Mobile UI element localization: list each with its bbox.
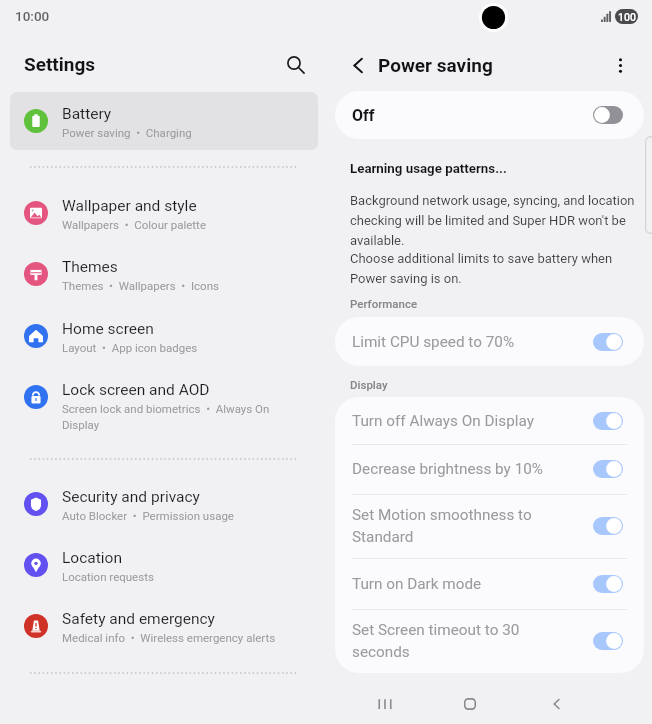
- staticText: Auto Blocker • Permission usage: [62, 509, 234, 522]
- staticText: Security and privacy: [62, 488, 200, 506]
- staticText: Medical info • Wireless emergency alerts: [62, 631, 276, 644]
- staticText: Wallpaper and style: [62, 197, 197, 215]
- button[interactable]: Off: [335, 91, 644, 139]
- button[interactable]: Turn off Always On Display: [335, 397, 644, 444]
- staticText: Set Screen timeout to 30 seconds: [352, 621, 520, 661]
- staticText: Battery: [62, 105, 112, 123]
- button[interactable]: Set Motion smoothness to Standard: [335, 494, 644, 558]
- button[interactable]: Wallpaper and style: [10, 184, 317, 240]
- button[interactable]: Themes: [10, 245, 317, 301]
- button[interactable]: Back: [340, 47, 376, 83]
- staticText: Screen lock and biometrics • Always On D…: [62, 402, 290, 432]
- button[interactable]: Limit CPU speed to 70%: [335, 317, 644, 366]
- staticText: Settings: [24, 53, 96, 75]
- button[interactable]: Recents: [363, 684, 407, 724]
- staticText: 100: [618, 11, 636, 23]
- staticText: 10:00: [15, 8, 50, 24]
- staticText: Learning usage patterns...: [350, 161, 507, 177]
- staticText: Background network usage, syncing, and l…: [350, 193, 642, 248]
- button[interactable]: Battery: [10, 92, 318, 150]
- button[interactable]: More options: [602, 47, 638, 83]
- button[interactable]: Back: [535, 684, 579, 724]
- staticText: Layout • App icon badges: [62, 341, 198, 354]
- button[interactable]: Security and privacy: [10, 475, 317, 531]
- staticText: Lock screen and AOD: [62, 381, 210, 399]
- button[interactable]: Decrease brightness by 10%: [335, 444, 644, 494]
- staticText: Power saving: [378, 54, 493, 76]
- staticText: Choose additional limits to save battery…: [350, 251, 642, 286]
- button[interactable]: Set Screen timeout to 30 seconds: [335, 609, 644, 673]
- staticText: Safety and emergency: [62, 610, 215, 628]
- staticText: Location requests: [62, 570, 154, 583]
- staticText: Decrease brightness by 10%: [352, 460, 544, 478]
- staticText: Themes: [62, 258, 118, 276]
- button[interactable]: Lock screen and AOD: [10, 368, 317, 424]
- staticText: Power saving • Charging: [62, 126, 192, 139]
- staticText: Off: [352, 106, 375, 125]
- staticText: Performance: [350, 297, 418, 310]
- staticText: Turn off Always On Display: [352, 412, 534, 430]
- button[interactable]: Safety and emergency: [10, 597, 317, 653]
- staticText: Turn on Dark mode: [352, 575, 482, 593]
- staticText: Wallpapers • Colour palette: [62, 218, 206, 231]
- staticText: Set Motion smoothness to Standard: [352, 506, 532, 546]
- button[interactable]: Location: [10, 536, 317, 592]
- staticText: Themes • Wallpapers • Icons: [62, 279, 219, 292]
- staticText: Limit CPU speed to 70%: [352, 333, 515, 351]
- button[interactable]: Home screen: [10, 307, 317, 363]
- staticText: Display: [350, 378, 388, 391]
- staticText: Location: [62, 549, 122, 567]
- button[interactable]: Search: [277, 46, 313, 82]
- staticText: Home screen: [62, 320, 154, 338]
- button[interactable]: Turn on Dark mode: [335, 558, 644, 609]
- button[interactable]: Home: [448, 684, 492, 724]
